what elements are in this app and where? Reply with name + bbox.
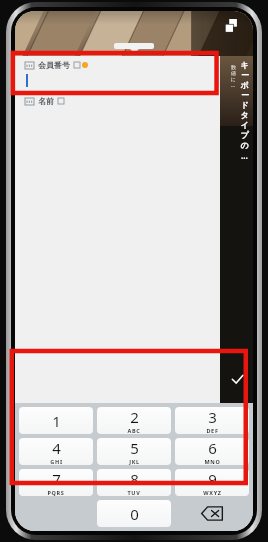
- button[interactable]: 6: [175, 438, 249, 465]
- staticText: ABC: [127, 427, 141, 434]
- staticText: JKL: [129, 458, 140, 465]
- staticText: キ: [240, 60, 249, 70]
- button[interactable]: Copy: [225, 19, 239, 33]
- staticText: MNO: [204, 458, 221, 465]
- staticText: 値: [231, 70, 236, 76]
- staticText: PQRS: [47, 489, 65, 496]
- button[interactable]: Backspace: [173, 498, 251, 529]
- staticText: 4: [52, 438, 61, 458]
- staticText: GHI: [50, 458, 63, 465]
- button[interactable]: 名前: [25, 96, 211, 112]
- staticText: 3: [208, 407, 217, 427]
- staticText: 1: [52, 411, 61, 431]
- staticText: に: [230, 76, 236, 82]
- staticText: 2: [130, 407, 139, 427]
- staticText: プ: [240, 130, 249, 140]
- staticText: 6: [208, 438, 217, 458]
- staticText: ド: [240, 100, 249, 110]
- staticText: WXYZ: [203, 489, 222, 496]
- staticText: 7: [52, 469, 61, 489]
- staticText: 5: [130, 438, 139, 458]
- staticText: …: [241, 150, 248, 161]
- staticText: ボ: [240, 80, 249, 90]
- button[interactable]: 会員番号: [25, 60, 211, 89]
- staticText: 数: [231, 64, 236, 70]
- button[interactable]: 7: [19, 469, 93, 496]
- staticText: 8: [130, 469, 139, 489]
- button[interactable]: 2: [97, 407, 171, 434]
- staticText: ー: [241, 90, 249, 100]
- staticText: 名前: [38, 96, 54, 106]
- staticText: DEF: [206, 427, 219, 434]
- button[interactable]: Confirm: [227, 369, 247, 389]
- staticText: 会員番号: [38, 60, 70, 70]
- staticText: TUV: [127, 489, 141, 496]
- button[interactable]: 1: [19, 407, 93, 434]
- staticText: 0: [130, 504, 139, 524]
- button[interactable]: 5: [97, 438, 171, 465]
- button[interactable]: 8: [97, 469, 171, 496]
- staticText: ー: [241, 70, 249, 80]
- button[interactable]: 0: [97, 500, 171, 527]
- button[interactable]: 4: [19, 438, 93, 465]
- staticText: イ: [240, 120, 249, 130]
- button[interactable]: 9: [175, 469, 249, 496]
- staticText: …: [231, 82, 235, 89]
- staticText: 9: [208, 469, 217, 489]
- staticText: の: [240, 140, 249, 150]
- staticText: タ: [240, 110, 249, 120]
- button[interactable]: 3: [175, 407, 249, 434]
